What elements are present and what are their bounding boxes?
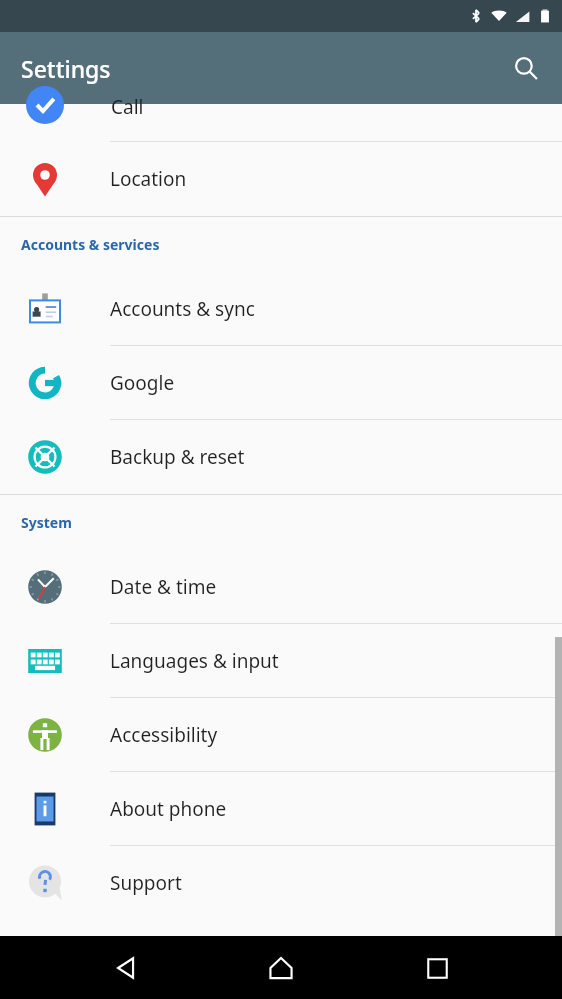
button[interactable]: Back	[96, 938, 156, 998]
button[interactable]: Languages & input	[0, 624, 562, 698]
staticText: Languages & input	[110, 648, 279, 674]
button[interactable]: Support	[0, 846, 562, 920]
staticText: Location	[110, 166, 187, 192]
button[interactable]: Search	[504, 46, 548, 90]
button[interactable]: Date & time	[0, 550, 562, 624]
staticText: Support	[110, 870, 182, 896]
button[interactable]: Accounts & sync	[0, 272, 562, 346]
staticText: Date & time	[110, 574, 217, 600]
button[interactable]: Accessibility	[0, 698, 562, 772]
button[interactable]: Google	[0, 346, 562, 420]
button[interactable]: Recent apps	[407, 938, 467, 998]
button[interactable]: About phone	[0, 772, 562, 846]
button[interactable]: Call	[0, 104, 562, 142]
staticText: About phone	[110, 796, 227, 822]
staticText: Google	[110, 370, 175, 396]
button[interactable]: Location	[0, 142, 562, 216]
button[interactable]: Backup & reset	[0, 420, 562, 494]
staticText: System	[21, 513, 72, 532]
staticText: Backup & reset	[110, 444, 245, 470]
staticText: Settings	[21, 53, 111, 84]
staticText: Call	[111, 94, 144, 120]
button[interactable]: Home	[251, 938, 311, 998]
staticText: Accounts & sync	[110, 296, 255, 322]
staticText: Accounts & services	[21, 235, 160, 254]
staticText: Accessibility	[110, 722, 218, 748]
